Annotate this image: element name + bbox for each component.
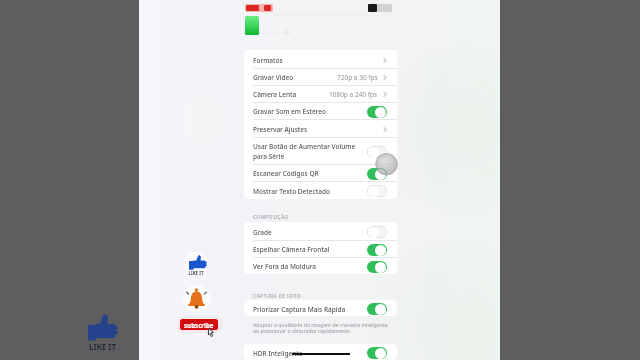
button[interactable]: Priorizar Captura Mais Rápida: [244, 300, 397, 316]
other: More: [383, 74, 387, 81]
button[interactable]: Toggle: [367, 226, 387, 238]
staticText: Priorizar Captura Mais Rápida: [253, 305, 346, 314]
button[interactable]: Formatos: [244, 50, 397, 68]
button[interactable]: Toggle: [367, 347, 387, 359]
staticText: 720p a 30 fps: [337, 73, 378, 82]
staticText: Usar Botão de Aumentar Volume: [253, 142, 356, 151]
other: More: [383, 91, 387, 98]
staticText: Gravar Vídeo: [253, 73, 294, 82]
button[interactable]: Câmera Lenta: [244, 85, 397, 102]
button[interactable]: Toggle: [367, 303, 387, 315]
button[interactable]: Preservar Ajustes: [244, 119, 397, 137]
staticText: COMPOSIÇÃO: [253, 214, 289, 221]
staticText: CAPTURA DE FOTO: [253, 293, 301, 300]
staticText: Câmera Lenta: [253, 90, 297, 99]
button[interactable]: HDR Inteligente: [244, 344, 397, 360]
button[interactable]: Gravar Vídeo: [244, 68, 397, 85]
button[interactable]: Escanear Códigos QR: [244, 164, 397, 181]
button[interactable]: Toggle: [367, 146, 387, 158]
staticText: Preservar Ajustes: [253, 125, 308, 134]
staticText: Formatos: [253, 56, 283, 65]
button[interactable]: Toggle: [367, 168, 387, 180]
other: More: [383, 57, 387, 64]
button[interactable]: subscribe: [180, 319, 218, 330]
staticText: Mostrar Texto Detectado: [253, 187, 330, 196]
button[interactable]: Mostrar Texto Detectado: [244, 181, 397, 199]
staticText: Adaptar a qualidade da imagem de maneira…: [253, 321, 388, 335]
staticText: 1080p a 240 fps: [329, 90, 378, 99]
staticText: Gravar Som em Estéreo: [253, 107, 326, 116]
staticText: HDR Inteligente: [253, 349, 303, 358]
button[interactable]: Toggle: [367, 261, 387, 273]
staticText: LIKE IT: [186, 270, 206, 276]
button[interactable]: Espelhar Câmera Frontal: [244, 240, 397, 257]
staticText: subscribe: [184, 321, 214, 329]
staticText: para Série: [253, 152, 285, 161]
staticText: Escanear Códigos QR: [253, 169, 319, 178]
button[interactable]: Notifications: [183, 285, 210, 312]
staticText: LIKE IT: [87, 341, 118, 352]
staticText: Espelhar Câmera Frontal: [253, 245, 330, 254]
button[interactable]: Toggle: [367, 185, 387, 197]
staticText: Grade: [253, 228, 272, 237]
staticText: Ver Fora da Moldura: [253, 262, 317, 271]
button[interactable]: Gravar Som em Estéreo: [244, 102, 397, 119]
other: More: [383, 126, 387, 133]
button[interactable]: Usar Botão de Aumentar Volume: [244, 137, 397, 164]
button[interactable]: Toggle: [367, 106, 387, 118]
button[interactable]: Ver Fora da Moldura: [244, 257, 397, 274]
button[interactable]: Grade: [244, 222, 397, 240]
button[interactable]: Like: [184, 252, 208, 276]
button[interactable]: Toggle: [367, 244, 387, 256]
